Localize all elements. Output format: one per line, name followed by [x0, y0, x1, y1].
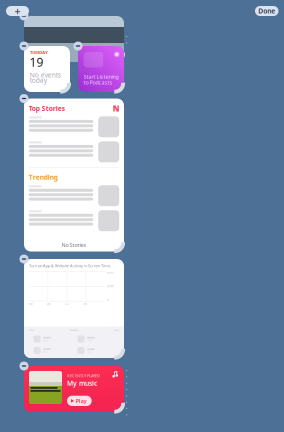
staticText: 19 — [30, 54, 44, 70]
staticText: TUESDAY — [30, 50, 48, 55]
staticText: No Stories — [61, 241, 86, 248]
staticText: My music — [67, 379, 97, 388]
button[interactable]: Done — [255, 6, 278, 16]
button[interactable]: Remove widget — [19, 94, 28, 103]
staticText: Play — [76, 397, 87, 404]
button[interactable]: Add widget — [6, 6, 29, 16]
staticText: 06 — [47, 302, 51, 306]
button[interactable]: Remove widget — [19, 41, 28, 50]
staticText: 60m — [107, 271, 113, 274]
button[interactable]: Play — [67, 396, 92, 406]
staticText: Trending — [29, 173, 58, 182]
button[interactable]: Remove widget — [19, 11, 28, 20]
staticText: to Podcasts — [84, 79, 113, 86]
staticText: Turn on App & Website Activity in Screen… — [29, 263, 111, 268]
staticText: + — [14, 4, 20, 18]
staticText: 00 — [29, 302, 33, 306]
staticText: Start Listening — [84, 73, 119, 80]
staticText: 0 — [107, 298, 109, 302]
button[interactable]: Remove widget — [19, 254, 28, 263]
staticText: RECENTLY PLAYED — [67, 373, 100, 378]
staticText: No events — [30, 71, 61, 79]
staticText: today — [30, 76, 47, 85]
staticText: N — [113, 103, 120, 114]
button[interactable]: Remove widget — [19, 361, 28, 370]
button[interactable]: Remove widget — [73, 41, 82, 50]
staticText: 18 — [83, 302, 87, 306]
staticText: 30m — [107, 284, 113, 288]
staticText: Top Stories — [29, 104, 65, 113]
staticText: Done — [258, 7, 275, 15]
staticText: 12 — [65, 302, 69, 306]
